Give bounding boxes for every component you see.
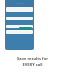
staticText: EVERY call bbox=[22, 62, 43, 67]
button[interactable] bbox=[6, 25, 33, 28]
button[interactable] bbox=[6, 30, 33, 34]
staticText: Save results for bbox=[17, 56, 48, 61]
button[interactable] bbox=[6, 7, 33, 12]
button[interactable] bbox=[19, 27, 32, 30]
button[interactable] bbox=[6, 17, 33, 20]
